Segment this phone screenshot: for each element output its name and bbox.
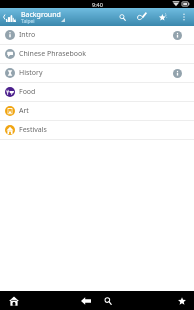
staticText: Taipei [21,18,35,25]
button[interactable]: Art [0,102,194,120]
button[interactable]: Chinese Phrasebook [0,45,194,63]
staticText: Chinese Phrasebook [19,49,87,59]
staticText: History [19,68,43,78]
button[interactable]: Favorites [172,291,191,310]
button[interactable]: Intro [0,26,194,44]
button[interactable]: Favorite [154,8,172,26]
staticText: Intro [19,30,36,40]
button[interactable]: Search [98,291,117,310]
button[interactable]: Search [113,8,131,26]
staticText: Food [19,87,36,97]
button[interactable]: Edit [133,8,151,26]
staticText: Background [21,10,61,20]
button[interactable]: Festivals [0,121,194,139]
staticText: Art [19,106,29,116]
button[interactable]: Back [76,291,95,310]
button[interactable]: More options [175,8,193,26]
button[interactable]: History [0,64,194,82]
button[interactable]: Food [0,83,194,101]
staticText: 9:40 [92,1,103,8]
button[interactable]: Navigate up [0,8,194,26]
button[interactable]: Home [4,291,23,310]
staticText: Festivals [19,125,47,135]
